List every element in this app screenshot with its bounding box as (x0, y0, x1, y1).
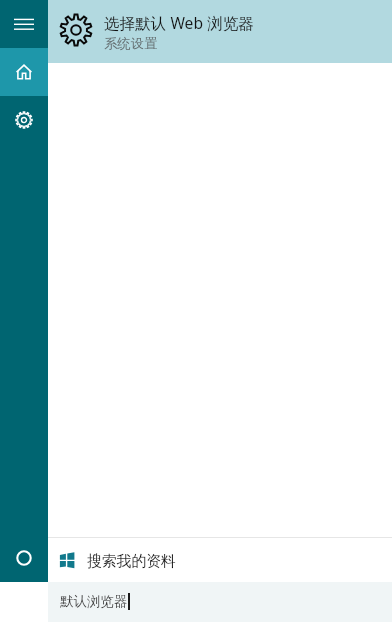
staticText: 默认浏览器 (60, 593, 128, 610)
staticText: 系统设置 (104, 35, 158, 52)
staticText: 搜索我的资料 (87, 552, 176, 571)
button[interactable]: Home (0, 48, 48, 96)
button[interactable]: Menu (0, 0, 48, 48)
button[interactable]: Cortana (0, 534, 48, 582)
button[interactable]: 选择默认 Web 浏览器 (48, 0, 392, 63)
button[interactable]: Settings (0, 96, 48, 144)
button[interactable]: 默认浏览器 (48, 582, 392, 622)
staticText: 选择默认 Web 浏览器 (104, 12, 254, 33)
button[interactable]: 搜索我的资料 (48, 538, 392, 582)
